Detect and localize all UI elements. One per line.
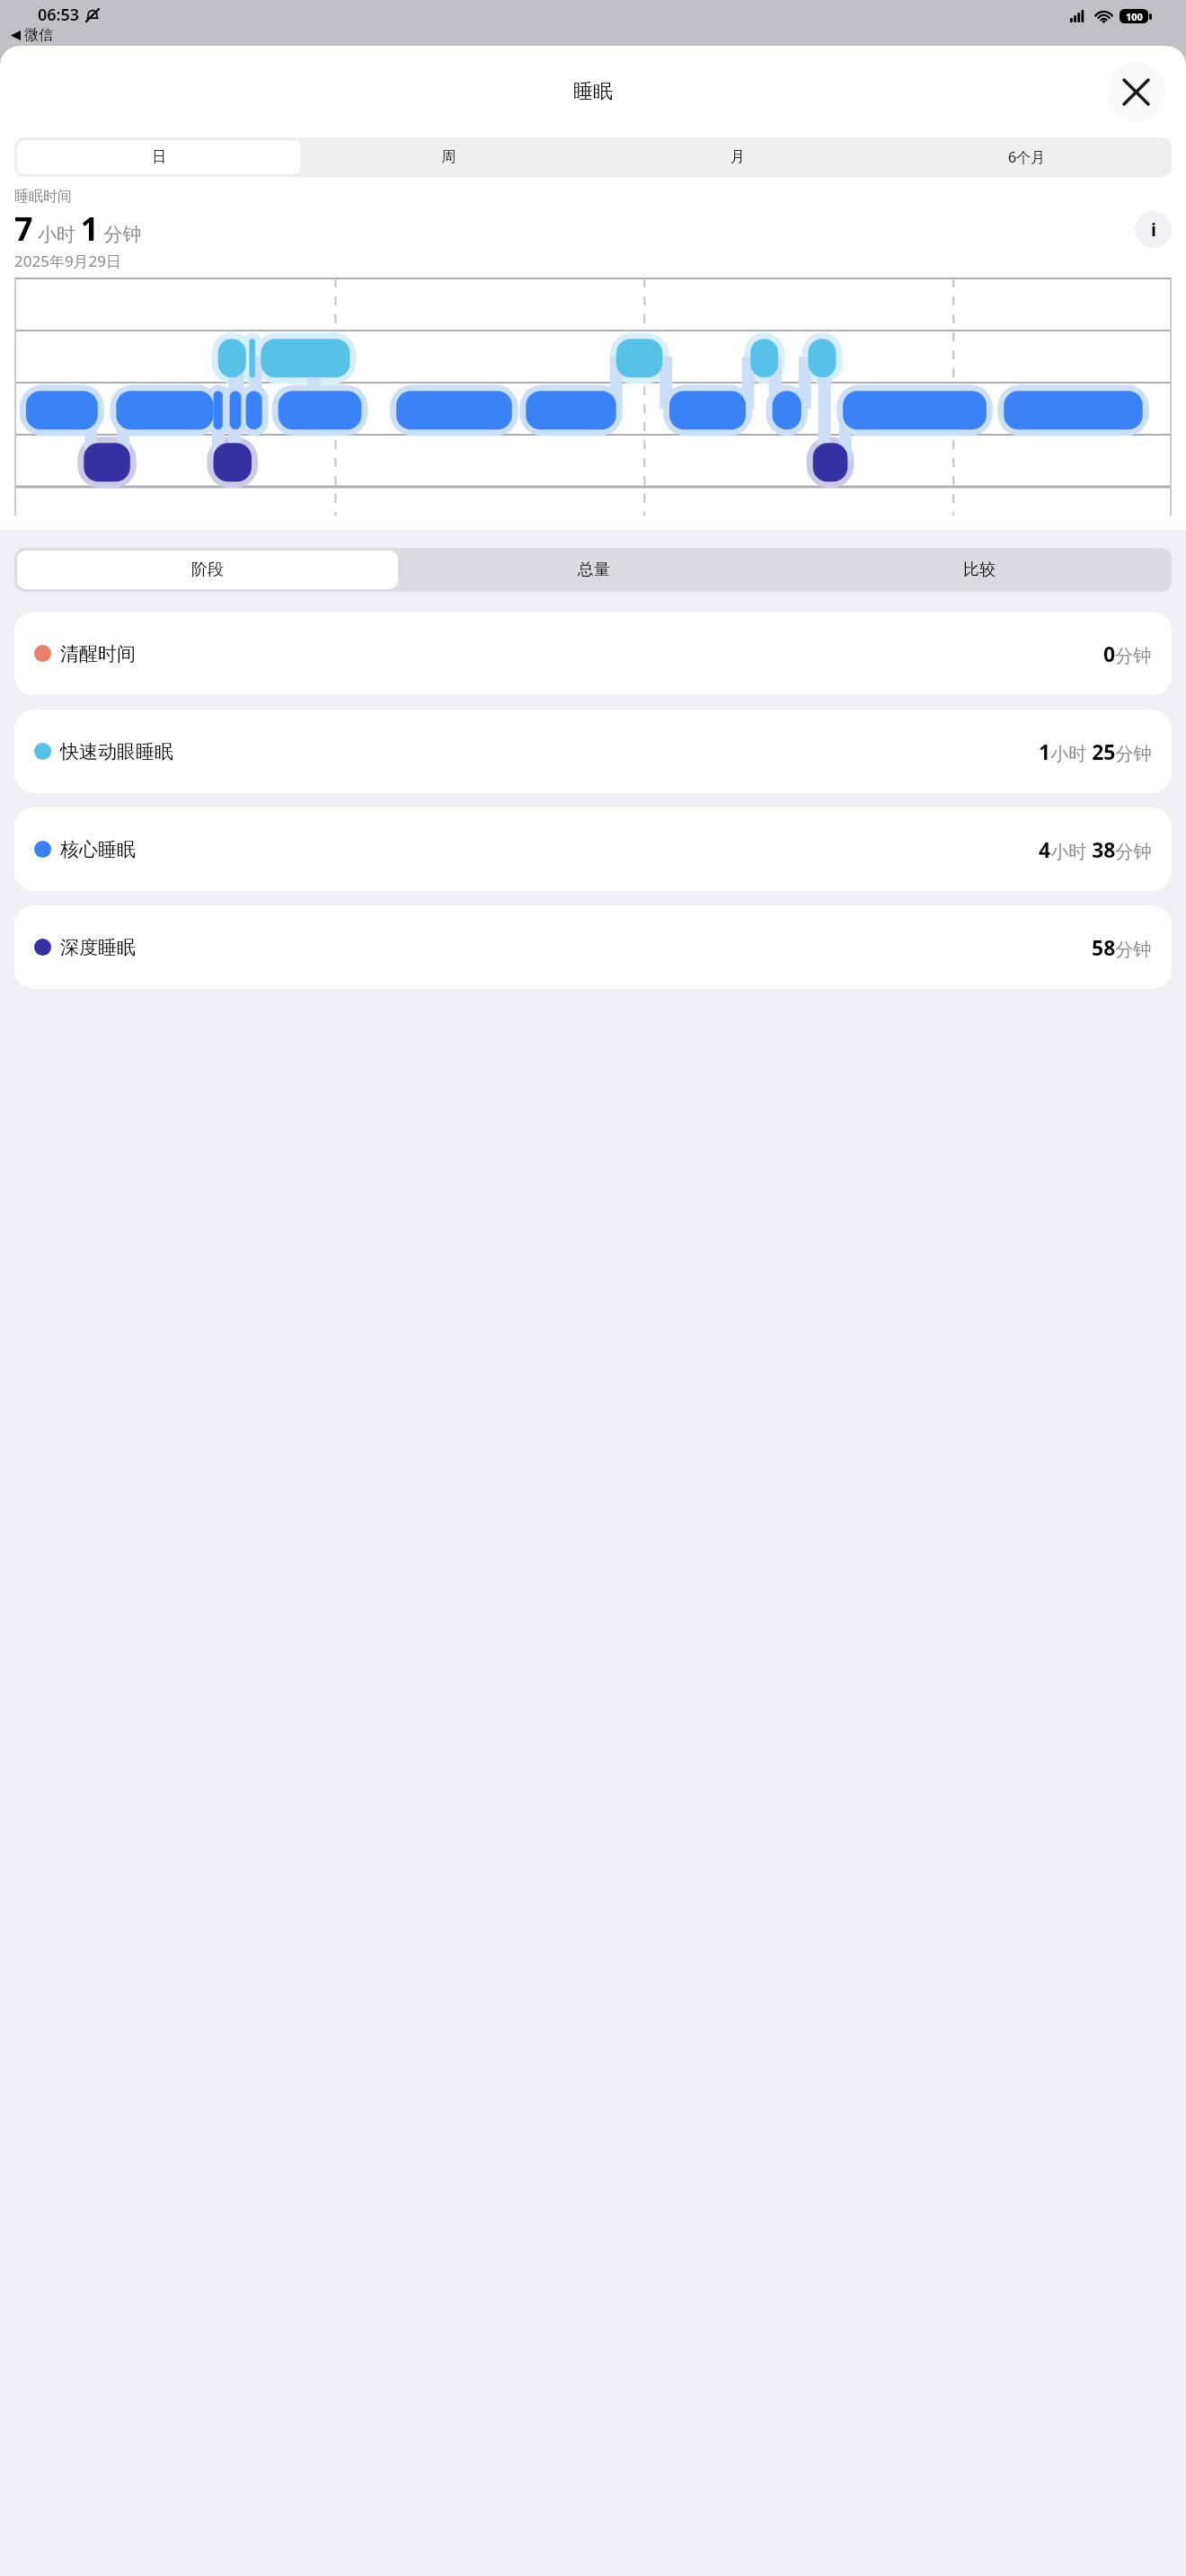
staticText: 0分钟 (1103, 640, 1152, 667)
button[interactable]: 月 (596, 140, 880, 174)
staticText: 日 (152, 148, 166, 166)
staticText: 2025年9月29日 (14, 251, 122, 271)
staticText: 7 小时 1 分钟 (14, 207, 142, 251)
button[interactable]: Info (1135, 211, 1172, 248)
button[interactable]: 快速动眼睡眠 (14, 710, 1172, 793)
staticText: 58分钟 (1092, 933, 1152, 961)
staticText: 1小时 25分钟 (1039, 737, 1152, 765)
staticText: 4小时 38分钟 (1039, 835, 1152, 863)
staticText: 06:53 (38, 4, 80, 26)
staticText: 核心睡眠 (60, 838, 136, 861)
button[interactable]: 日 (17, 140, 301, 174)
staticText: 100 (1126, 10, 1143, 23)
button[interactable]: 周 (306, 140, 590, 174)
staticText: i (1151, 217, 1156, 242)
button[interactable]: 清醒时间 (14, 612, 1172, 695)
button[interactable]: 深度睡眠 (14, 905, 1172, 989)
staticText: 微信 (24, 26, 53, 44)
staticText: 周 (441, 148, 456, 166)
button[interactable]: Close (1107, 63, 1165, 121)
staticText: 清醒时间 (60, 642, 136, 666)
staticText: 月 (730, 148, 745, 166)
staticText: 6个月 (1008, 147, 1046, 167)
staticText: 睡眠 (573, 79, 613, 104)
staticText: 总量 (578, 560, 610, 580)
button[interactable]: 6个月 (885, 140, 1169, 174)
button[interactable]: 阶段 (17, 551, 398, 589)
staticText: 快速动眼睡眠 (60, 740, 173, 763)
button[interactable]: 核心睡眠 (14, 807, 1172, 891)
staticText: 睡眠时间 (14, 188, 72, 206)
button[interactable]: 比较 (789, 551, 1169, 589)
staticText: 深度睡眠 (60, 936, 136, 959)
staticText: 阶段 (191, 560, 224, 580)
button[interactable]: 总量 (403, 551, 783, 589)
staticText: 比较 (963, 560, 996, 580)
